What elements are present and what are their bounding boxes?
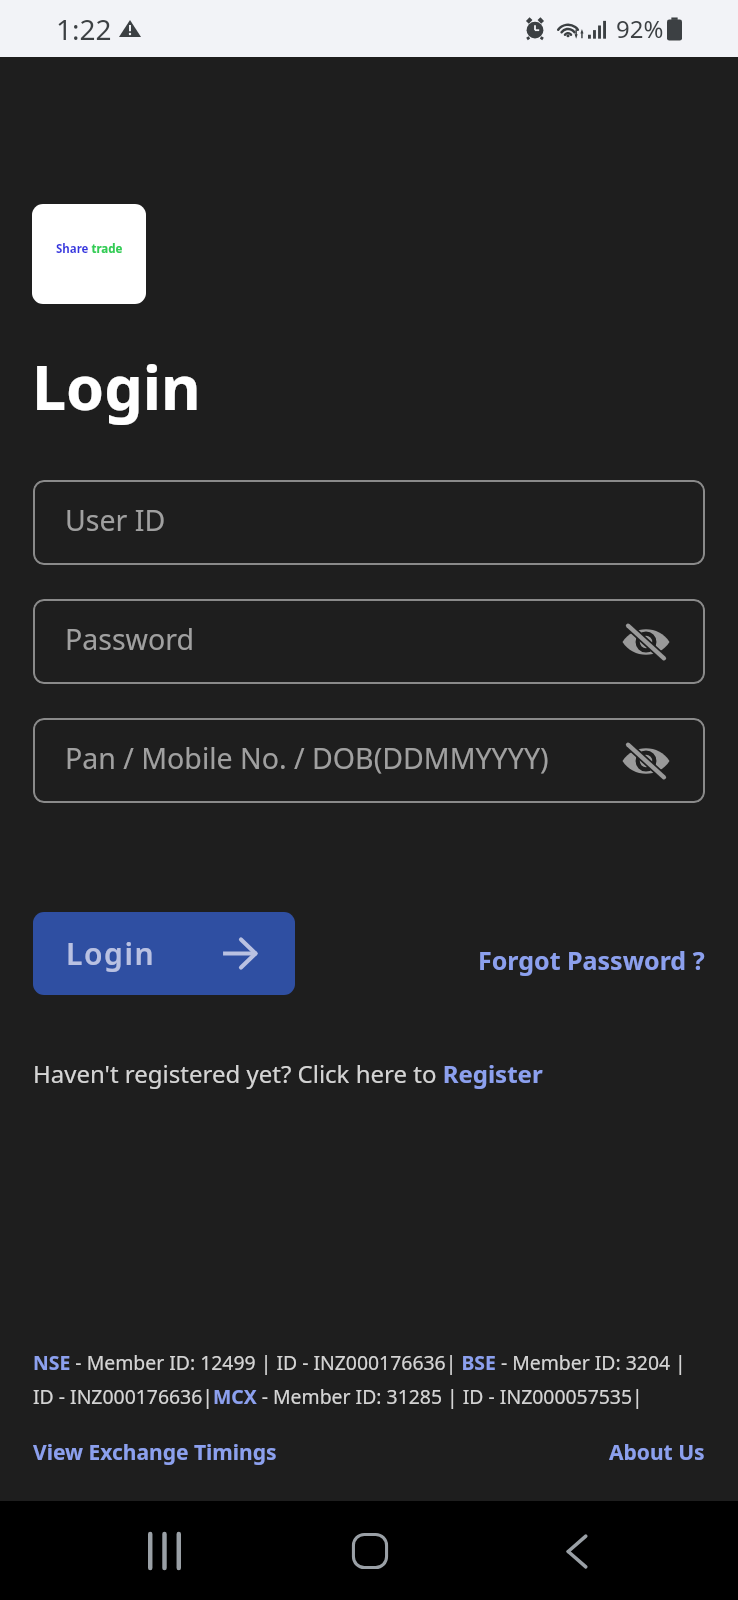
button[interactable]: Back <box>527 1506 627 1596</box>
button[interactable]: Show password <box>614 731 678 791</box>
staticText: View Exchange Timings <box>33 1438 277 1467</box>
staticText: NSE - Member ID: 12499 | ID - INZ0001766… <box>33 1349 723 1409</box>
button[interactable]: Password <box>33 599 705 684</box>
button[interactable]: Show password <box>614 612 678 672</box>
button[interactable]: Home <box>320 1506 420 1596</box>
staticText: 1:22 <box>56 10 112 48</box>
staticText: Share trade <box>56 241 123 257</box>
button[interactable]: Login <box>33 912 295 995</box>
button[interactable]: Pan / Mobile No. / DOB(DDMMYYYY) <box>33 718 705 803</box>
button[interactable]: User ID <box>33 480 705 565</box>
staticText: Login <box>32 345 201 428</box>
staticText: Password <box>65 620 194 659</box>
staticText: Pan / Mobile No. / DOB(DDMMYYYY) <box>65 739 549 778</box>
button[interactable]: Recent apps <box>114 1506 214 1596</box>
button[interactable]: Forgot Password ? <box>472 937 711 983</box>
button[interactable]: View Exchange Timings <box>33 1438 277 1467</box>
staticText: Forgot Password ? <box>478 943 705 977</box>
staticText: User ID <box>65 501 166 540</box>
staticText: About Us <box>609 1438 705 1467</box>
button[interactable]: Haven't registered yet? Click here to Re… <box>33 1057 543 1090</box>
staticText: 92% <box>616 12 664 45</box>
button[interactable]: About Us <box>609 1438 705 1467</box>
staticText: Login <box>66 933 156 974</box>
